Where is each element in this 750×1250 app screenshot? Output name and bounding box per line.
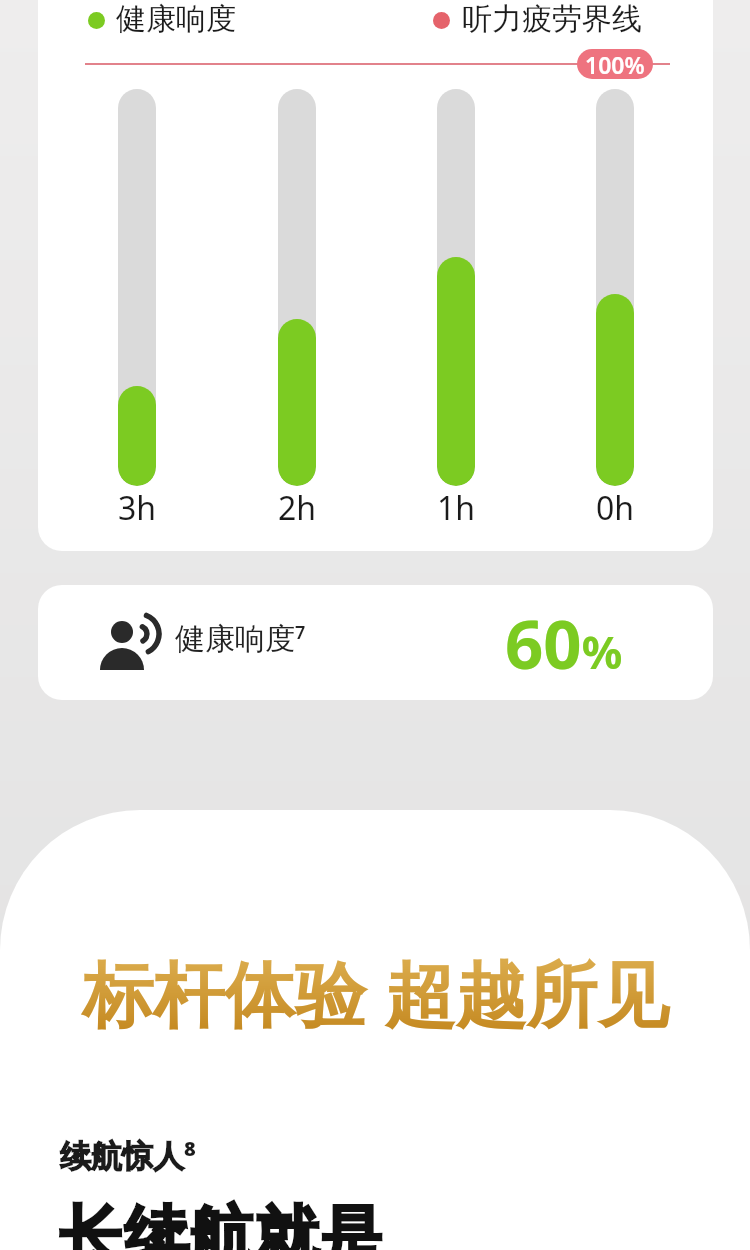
staticText: 续航惊人8 bbox=[60, 1135, 196, 1176]
button[interactable]: 健康响度7 bbox=[38, 585, 713, 700]
button[interactable]: 健康响度 bbox=[38, 0, 713, 551]
staticText: 2h bbox=[278, 486, 317, 530]
staticText: 1h bbox=[437, 486, 476, 530]
staticText: 长续航就是 bbox=[59, 1196, 384, 1250]
staticText: 0h bbox=[596, 486, 635, 530]
staticText: 健康响度 bbox=[116, 0, 236, 38]
staticText: 100% bbox=[585, 49, 645, 79]
staticText: 3h bbox=[118, 486, 157, 530]
staticText: 标杆体验 超越所见 bbox=[82, 944, 669, 1041]
staticText: 听力疲劳界线 bbox=[462, 0, 642, 38]
staticText: 60% bbox=[505, 597, 623, 688]
staticText: 健康响度7 bbox=[175, 620, 306, 658]
